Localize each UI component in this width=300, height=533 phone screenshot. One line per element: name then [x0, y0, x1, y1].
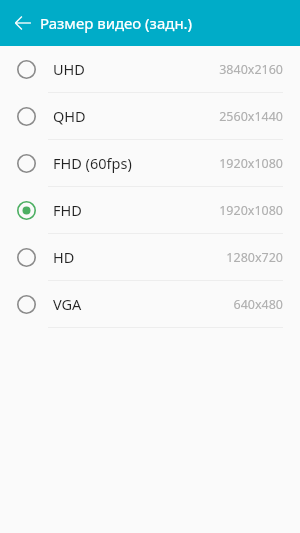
- staticText: FHD: [53, 200, 82, 220]
- staticText: 1280x720: [226, 249, 283, 266]
- button[interactable]: VGA: [0, 281, 300, 328]
- staticText: 3840x2160: [219, 61, 283, 78]
- staticText: FHD (60fps): [53, 153, 132, 173]
- button[interactable]: Back: [6, 6, 40, 40]
- button[interactable]: FHD: [0, 187, 300, 234]
- button[interactable]: QHD: [0, 93, 300, 140]
- staticText: UHD: [53, 59, 85, 79]
- staticText: QHD: [53, 106, 86, 126]
- staticText: 1920x1080: [219, 202, 283, 219]
- button[interactable]: UHD: [0, 46, 300, 93]
- button[interactable]: HD: [0, 234, 300, 281]
- staticText: HD: [53, 247, 75, 267]
- staticText: 1920x1080: [219, 155, 283, 172]
- button[interactable]: FHD (60fps): [0, 140, 300, 187]
- staticText: VGA: [53, 294, 82, 314]
- staticText: 2560x1440: [219, 108, 283, 125]
- staticText: Размер видео (задн.): [40, 13, 193, 33]
- staticText: 640x480: [233, 296, 283, 313]
